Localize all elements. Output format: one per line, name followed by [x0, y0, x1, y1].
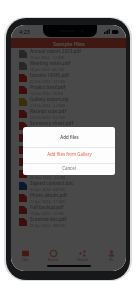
staticText: Annual report 2023.pdf	[30, 48, 81, 54]
button[interactable]: Budget plan.pdf	[11, 156, 126, 168]
staticText: 18 Jan 2024 · 842 KB	[30, 67, 64, 72]
staticText: Photo album.pdf	[30, 192, 67, 198]
staticText: 22 Mar 2024 · 310 KB	[30, 163, 66, 168]
staticText: 19 Apr 2024 · 12 MB	[30, 211, 64, 216]
button[interactable]: Old archive.pdf	[11, 144, 126, 156]
staticText: Signed contract.doc	[30, 180, 74, 186]
button[interactable]: Scanned doc.pdf	[11, 216, 126, 228]
button[interactable]: Gallery export.zip	[11, 96, 126, 108]
staticText: Old archive.pdf	[30, 144, 64, 150]
button[interactable]: Project brief.pdf	[11, 84, 126, 96]
button[interactable]: Annual report 2023.pdf	[11, 48, 126, 60]
staticText: Scanned doc.pdf	[30, 216, 67, 222]
button[interactable]: Recent	[39, 249, 68, 263]
staticText: 21 Feb 2024 · 3.4 MB	[30, 103, 65, 108]
staticText: Add files	[60, 134, 79, 140]
button[interactable]: Chart data.pdf	[11, 132, 126, 144]
staticText: 12 Jan 2024 · 1.2 MB	[30, 55, 64, 60]
button[interactable]: Add files from Gallery	[23, 148, 115, 163]
staticText: Files	[22, 258, 29, 262]
staticText: Slides version 2.pdf	[30, 168, 73, 174]
button[interactable]: Slides version 2.pdf	[11, 168, 126, 180]
staticText: 28 Feb 2024 · 512 KB	[30, 115, 65, 120]
staticText: 28 Mar 2024 · 2.2 MB	[30, 175, 66, 180]
staticText: Cancel	[62, 165, 76, 171]
staticText: Shared	[77, 258, 88, 262]
staticText: Receipt scan.pdf	[30, 108, 67, 114]
button[interactable]: Shared	[68, 249, 97, 263]
staticText: Summary sheet.pdf	[30, 120, 74, 126]
button[interactable]: Me	[97, 249, 126, 263]
staticText: 02 Feb 2024 · 221 KB	[30, 79, 65, 84]
staticText: 4:23	[19, 28, 30, 35]
staticText: Chart data.pdf	[30, 132, 62, 138]
button[interactable]: Signed contract.doc	[11, 180, 126, 192]
button[interactable]: Receipt scan.pdf	[11, 108, 126, 120]
button[interactable]: Files	[11, 249, 39, 263]
staticText: 15 Mar 2024 · 5.8 MB	[30, 151, 66, 156]
staticText: Project brief.pdf	[30, 84, 66, 90]
staticText: Meeting notes.pdf	[30, 60, 71, 66]
staticText: Invoice 10045.pdf	[30, 72, 69, 78]
staticText: Add files from Gallery	[47, 151, 92, 157]
staticText: Gallery export.zip	[30, 96, 69, 102]
staticText: 11 Apr 2024 · 7.1 MB	[30, 199, 65, 204]
staticText: 14 Feb 2024 · 98 KB	[30, 91, 63, 96]
staticText: 02 Apr 2024 · 640 KB	[30, 187, 65, 192]
button[interactable]: Photo album.pdf	[11, 192, 126, 204]
button[interactable]: Summary sheet.pdf	[11, 120, 126, 132]
staticText: Me	[109, 258, 114, 262]
staticText: 25 Apr 2024 · 980 KB	[30, 223, 65, 228]
button[interactable]: Cancel	[23, 164, 115, 175]
staticText: Sample files	[53, 40, 85, 47]
button[interactable]: Meeting notes.pdf	[11, 60, 126, 72]
button[interactable]: Invoice 10045.pdf	[11, 72, 126, 84]
staticText: Full backup.pdf	[30, 204, 64, 210]
button[interactable]: Full backup.pdf	[11, 204, 126, 216]
staticText: Recent	[48, 258, 59, 262]
